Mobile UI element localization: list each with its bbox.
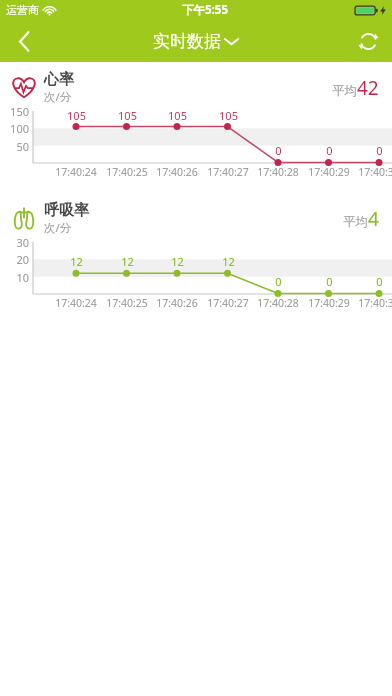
staticText: 呼吸率 <box>44 201 89 220</box>
staticText: 12 <box>222 254 235 269</box>
staticText: 17:40:24 <box>55 296 97 310</box>
staticText: 12 <box>70 254 83 269</box>
staticText: 30 <box>16 235 29 250</box>
staticText: 实时数据 <box>153 31 221 52</box>
staticText: 17:40:29 <box>308 296 350 310</box>
staticText: 4 <box>368 206 379 232</box>
staticText: 150 <box>10 104 29 119</box>
staticText: 17:40:25 <box>106 165 148 179</box>
staticText: 50 <box>16 139 29 154</box>
staticText: 0 <box>326 143 333 158</box>
staticText: 17:40:27 <box>207 165 249 179</box>
staticText: 42 <box>357 75 379 101</box>
staticText: 17:40:26 <box>156 165 198 179</box>
staticText: 17:40:27 <box>207 296 249 310</box>
staticText: 17:40:28 <box>257 165 299 179</box>
button[interactable]: 心率 <box>0 70 392 181</box>
staticText: 100 <box>10 121 29 136</box>
staticText: 20 <box>16 252 29 267</box>
staticText: 运营商 <box>6 3 39 17</box>
staticText: 17:40:30 <box>358 296 392 310</box>
button[interactable]: Back <box>0 20 48 62</box>
staticText: 105 <box>118 108 137 123</box>
staticText: 0 <box>376 143 383 158</box>
staticText: 平均 <box>343 214 368 230</box>
staticText: 心率 <box>44 70 74 89</box>
staticText: 下午5:55 <box>182 2 228 18</box>
staticText: 17:40:26 <box>156 296 198 310</box>
staticText: 17:40:29 <box>308 165 350 179</box>
staticText: 12 <box>171 254 184 269</box>
staticText: 105 <box>219 108 238 123</box>
staticText: 平均 <box>332 83 357 99</box>
staticText: 次/分 <box>44 89 72 105</box>
staticText: 105 <box>168 108 187 123</box>
staticText: 105 <box>67 108 86 123</box>
staticText: 0 <box>275 143 282 158</box>
staticText: 0 <box>376 274 383 289</box>
staticText: 17:40:24 <box>55 165 97 179</box>
staticText: 12 <box>121 254 134 269</box>
staticText: 0 <box>326 274 333 289</box>
staticText: 次/分 <box>44 220 72 236</box>
staticText: 17:40:28 <box>257 296 299 310</box>
button[interactable]: 实时数据 <box>153 31 239 52</box>
staticText: 17:40:25 <box>106 296 148 310</box>
staticText: 17:40:30 <box>358 165 392 179</box>
staticText: 10 <box>16 270 29 285</box>
staticText: 0 <box>275 274 282 289</box>
button[interactable]: 呼吸率 <box>0 201 392 312</box>
button[interactable]: Refresh <box>344 20 392 62</box>
